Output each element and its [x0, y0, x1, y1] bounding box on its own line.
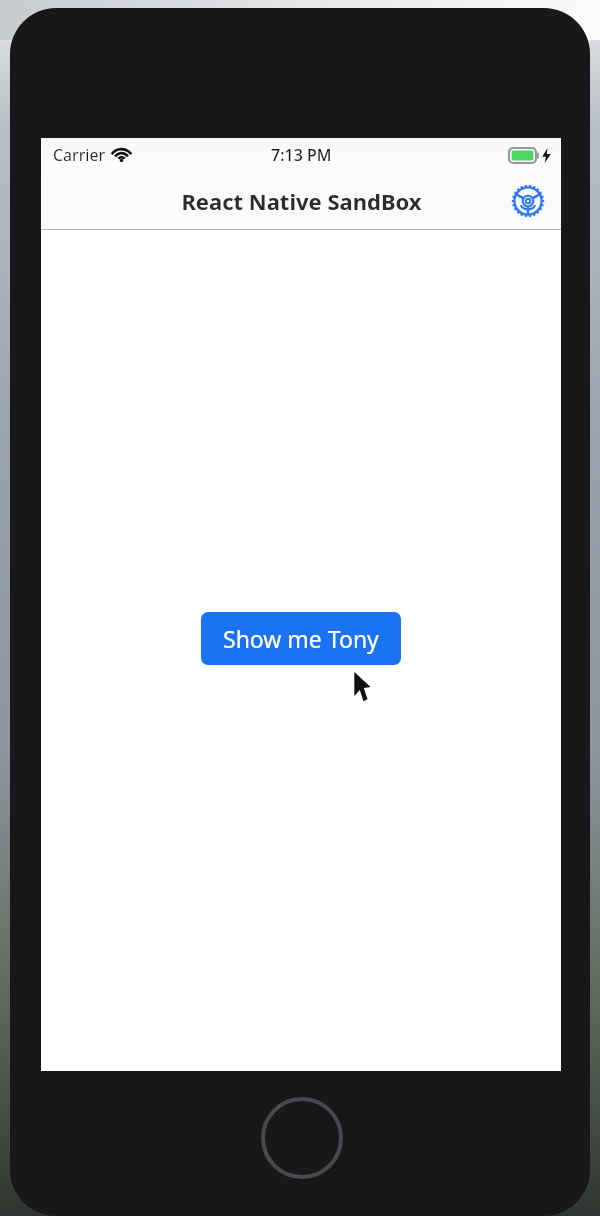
button[interactable]: Show me Tony: [201, 612, 401, 665]
staticText: Carrier: [53, 144, 106, 166]
button[interactable]: Settings: [511, 184, 545, 218]
staticText: Show me Tony: [223, 623, 379, 654]
staticText: 7:13 PM: [271, 144, 332, 166]
button[interactable]: Home: [261, 1097, 343, 1179]
staticText: React Native SandBox: [181, 186, 422, 216]
